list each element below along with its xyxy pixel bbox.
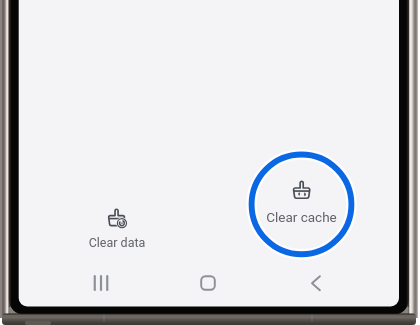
staticText: Clear cache: [258, 209, 345, 225]
button[interactable]: Home: [188, 263, 228, 303]
staticText: Clear data: [84, 235, 150, 250]
button[interactable]: Clear cache: [248, 151, 355, 258]
button[interactable]: Back: [296, 263, 336, 303]
button[interactable]: Clear data: [84, 200, 150, 252]
button[interactable]: Recents: [81, 263, 121, 303]
